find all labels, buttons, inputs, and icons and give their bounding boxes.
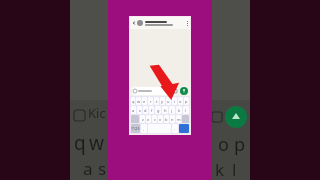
staticText: w	[89, 130, 104, 156]
button[interactable]: y	[160, 97, 165, 105]
staticText: h	[164, 108, 167, 113]
button[interactable]: g	[155, 106, 161, 114]
staticText: q	[74, 130, 86, 156]
staticText: ,	[143, 126, 145, 131]
button[interactable]: t	[154, 97, 159, 105]
staticText: x	[147, 117, 150, 122]
button[interactable]: i	[172, 97, 177, 105]
button[interactable]: q	[131, 97, 135, 105]
staticText: l	[232, 158, 237, 180]
staticText: y	[161, 99, 164, 104]
staticText: a	[83, 157, 93, 180]
staticText: Kicti	[88, 104, 108, 126]
button[interactable]: e	[142, 97, 147, 105]
staticText: t	[156, 99, 158, 104]
button[interactable]: p	[184, 97, 189, 105]
staticText: w	[137, 99, 141, 104]
button[interactable]: s	[137, 106, 142, 114]
staticText: p	[234, 132, 246, 156]
button[interactable]: b	[164, 115, 169, 123]
staticText: k	[178, 108, 181, 113]
staticText: o	[218, 132, 229, 156]
staticText: i	[174, 99, 176, 104]
staticText: a	[132, 108, 135, 113]
staticText: e	[143, 99, 146, 104]
staticText: o	[179, 99, 182, 104]
button[interactable]: x	[146, 115, 151, 123]
staticText: ?123	[131, 126, 140, 131]
button[interactable]: k	[176, 106, 182, 114]
button[interactable]: c	[152, 115, 157, 123]
staticText: d	[144, 108, 147, 113]
button[interactable]: m	[176, 115, 181, 123]
button[interactable]: h	[162, 106, 168, 114]
staticText: k	[215, 158, 225, 180]
staticText: b	[165, 117, 168, 122]
button[interactable]: Send voice message	[180, 87, 188, 95]
staticText: r	[150, 99, 152, 104]
button[interactable]: r	[148, 97, 153, 105]
staticText: p	[185, 99, 188, 104]
button[interactable]: Camera	[173, 89, 177, 93]
staticText: n	[171, 117, 174, 122]
staticText: .	[174, 126, 176, 131]
staticText: q	[132, 99, 135, 104]
button[interactable]: o	[178, 97, 183, 105]
staticText: j	[171, 108, 173, 113]
button[interactable]: a	[131, 106, 136, 114]
button[interactable]: w	[136, 97, 141, 105]
button[interactable]: z	[140, 115, 145, 123]
button[interactable]: Enter	[179, 124, 189, 133]
button[interactable]: Attach	[132, 87, 178, 95]
button[interactable]: d	[143, 106, 148, 114]
staticText: u	[167, 99, 170, 104]
staticText: c	[154, 117, 156, 122]
button[interactable]: l	[183, 106, 189, 114]
staticText: z	[142, 117, 144, 122]
staticText: m	[177, 117, 181, 122]
button[interactable]: Period	[172, 124, 178, 133]
staticText: g	[157, 108, 160, 113]
button[interactable]: j	[169, 106, 175, 114]
button[interactable]: Symbols	[131, 124, 140, 133]
button[interactable]: u	[166, 97, 171, 105]
button[interactable]: n	[170, 115, 175, 123]
staticText: f	[151, 108, 153, 113]
button[interactable]: f	[149, 106, 154, 114]
staticText: l	[185, 108, 187, 113]
staticText: s	[98, 157, 107, 180]
button[interactable]: Comma	[141, 124, 147, 133]
staticText: v	[159, 117, 162, 122]
staticText: s	[139, 108, 141, 113]
button[interactable]: v	[158, 115, 163, 123]
